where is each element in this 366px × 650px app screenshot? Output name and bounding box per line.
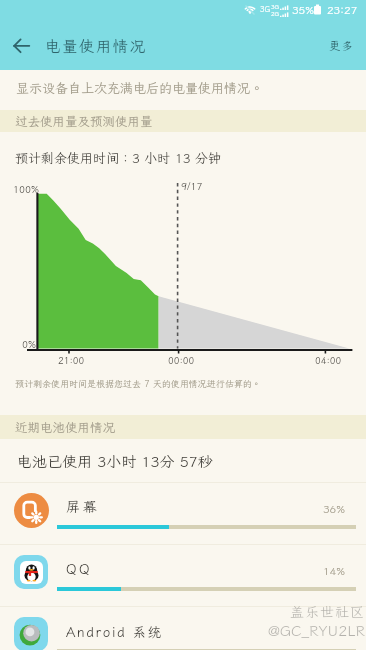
staticText: 21:00 — [58, 354, 85, 367]
staticText: 预计剩余使用时间：3 小时 13 分钟 — [15, 150, 222, 167]
staticText: 9/17 — [181, 180, 203, 193]
button[interactable]: 屏幕 — [0, 483, 366, 545]
staticText: 0% — [22, 338, 36, 351]
staticText: 显示设备自上次充满电后的电量使用情况。 — [16, 80, 264, 97]
staticText: QQ — [66, 560, 92, 578]
button[interactable]: Back — [9, 32, 37, 60]
staticText: 更多 — [329, 38, 354, 53]
staticText: 35% — [292, 3, 314, 17]
staticText: 电量使用情况 — [45, 36, 147, 56]
staticText: 3G — [260, 4, 271, 14]
staticText: 100% — [13, 183, 39, 196]
staticText: 预计剩余使用时间是根据您过去 7 天的使用情况进行估算的。 — [15, 378, 261, 390]
staticText: 14% — [295, 564, 345, 578]
staticText: 电池已使用 3小时 13分 57秒 — [17, 452, 213, 472]
staticText: @GC_RYU2LR5 — [268, 621, 366, 641]
staticText: 近期电池使用情况 — [15, 419, 116, 435]
staticText: 3G — [271, 3, 280, 11]
staticText: Android 系统 — [66, 623, 163, 641]
button[interactable]: 更多 — [329, 38, 354, 53]
staticText: 盖乐世社区 — [290, 603, 365, 621]
button[interactable]: QQ — [0, 545, 366, 607]
staticText: 23:27 — [327, 3, 358, 17]
staticText: 00:00 — [168, 354, 195, 367]
staticText: 过去使用量及预测使用量 — [15, 113, 153, 129]
staticText: 36% — [295, 502, 345, 516]
staticText: 屏幕 — [66, 498, 99, 516]
button[interactable]: Android 系统 — [0, 607, 366, 650]
staticText: 2G — [271, 10, 280, 18]
staticText: 04:00 — [315, 354, 342, 367]
